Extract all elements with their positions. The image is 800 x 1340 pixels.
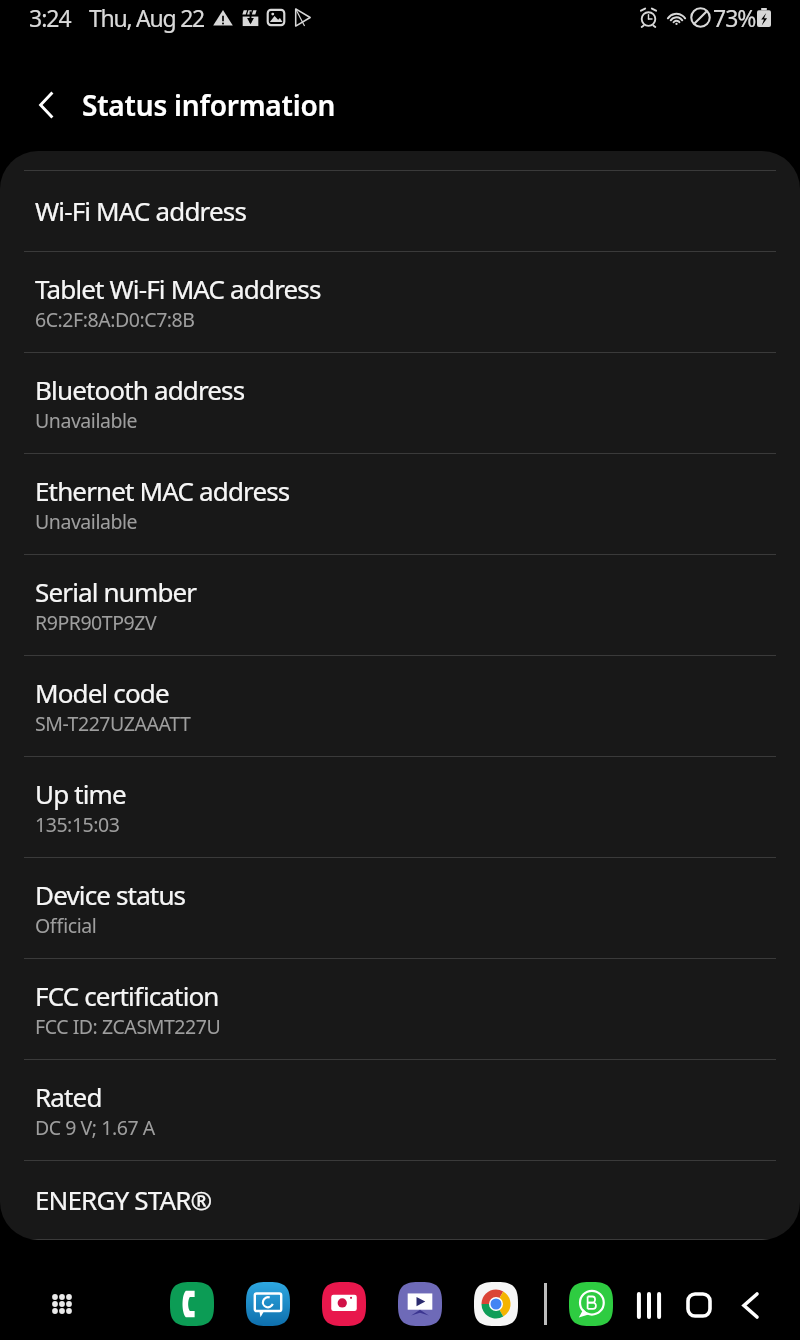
- button[interactable]: Camera: [322, 1282, 366, 1326]
- button[interactable]: Chrome: [474, 1282, 518, 1326]
- button[interactable]: Navigate up: [0, 65, 82, 145]
- staticText: R9PR90TP9ZV: [35, 609, 157, 636]
- button[interactable]: Device status: [0, 858, 800, 959]
- button[interactable]: WhatsApp Business: [569, 1282, 613, 1326]
- staticText: Wi-Fi MAC address: [35, 193, 246, 228]
- button[interactable]: FCC certification: [0, 959, 800, 1060]
- staticText: ENERGY STAR®: [35, 1182, 212, 1217]
- button[interactable]: Messages: [246, 1282, 290, 1326]
- button[interactable]: Ethernet MAC address: [0, 454, 800, 555]
- button[interactable]: Model code: [0, 656, 800, 757]
- staticText: DC 9 V; 1.67 A: [35, 1114, 155, 1141]
- staticText: 6C:2F:8A:D0:C7:8B: [35, 306, 195, 333]
- button[interactable]: Rated: [0, 1060, 800, 1161]
- button[interactable]: Back: [726, 1281, 774, 1329]
- button[interactable]: Serial number: [0, 555, 800, 656]
- staticText: Tablet Wi-Fi MAC address: [35, 271, 321, 306]
- staticText: Unavailable: [35, 407, 138, 434]
- button[interactable]: Up time: [0, 757, 800, 858]
- staticText: SM-T227UZAAATT: [35, 710, 191, 737]
- button[interactable]: Bluetooth address: [0, 353, 800, 454]
- staticText: Up time: [35, 776, 126, 811]
- button[interactable]: Video player: [398, 1282, 442, 1326]
- staticText: 3:24: [29, 2, 71, 33]
- staticText: FCC ID: ZCASMT227U: [35, 1013, 221, 1040]
- staticText: 73%: [713, 2, 756, 33]
- staticText: Thu, Aug 22: [89, 2, 204, 33]
- staticText: Rated: [35, 1079, 102, 1114]
- staticText: Model code: [35, 675, 169, 710]
- staticText: 135:15:03: [35, 811, 120, 838]
- button[interactable]: Phone: [170, 1282, 214, 1326]
- button[interactable]: Apps: [40, 1282, 84, 1326]
- staticText: Official: [35, 912, 97, 939]
- button[interactable]: ENERGY STAR®: [0, 1161, 800, 1240]
- button[interactable]: Wi-Fi MAC address: [0, 171, 800, 252]
- staticText: Unavailable: [35, 508, 138, 535]
- button[interactable]: Tablet Wi-Fi MAC address: [0, 252, 800, 353]
- button[interactable]: Home: [675, 1281, 723, 1329]
- staticText: Status information: [82, 86, 336, 124]
- staticText: Serial number: [35, 574, 197, 609]
- button[interactable]: Recent apps: [625, 1281, 673, 1329]
- staticText: Ethernet MAC address: [35, 473, 290, 508]
- staticText: Device status: [35, 877, 186, 912]
- staticText: FCC certification: [35, 978, 219, 1013]
- staticText: Bluetooth address: [35, 372, 245, 407]
